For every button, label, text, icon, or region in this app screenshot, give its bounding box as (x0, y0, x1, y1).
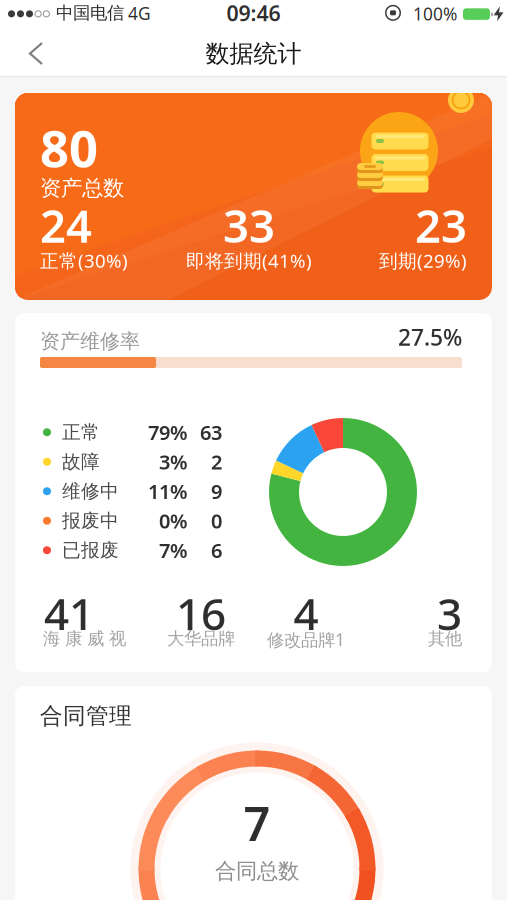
staticText: 海 康 威 视 (43, 628, 126, 649)
staticText: 24 (40, 195, 92, 255)
staticText: 0% (159, 507, 188, 534)
staticText: 9 (211, 478, 222, 505)
staticText: 中国电信 (56, 2, 124, 24)
staticText: 3% (159, 448, 188, 475)
staticText: 33 (223, 195, 275, 255)
staticText: 维修中 (62, 480, 119, 503)
staticText: 4 (293, 584, 318, 642)
staticText: 09:46 (226, 0, 280, 27)
staticText: 3 (437, 584, 462, 642)
staticText: 已报废 (62, 539, 119, 562)
staticText: 23 (415, 195, 467, 255)
staticText: 到期(29%) (379, 248, 467, 273)
staticText: 80 (40, 114, 98, 181)
staticText: 100% (413, 2, 457, 25)
staticText: 资产维修率 (40, 329, 140, 354)
staticText: 正常(30%) (40, 248, 128, 273)
staticText: 4G (128, 2, 151, 25)
staticText: 修改品牌1 (267, 628, 345, 651)
staticText: 资产总数 (40, 175, 124, 201)
staticText: 41 (44, 584, 94, 642)
staticText: 6 (211, 537, 222, 564)
staticText: 其他 (428, 628, 462, 649)
staticText: 合同总数 (215, 858, 299, 884)
staticText: 79% (148, 419, 188, 446)
staticText: 0 (211, 507, 222, 534)
staticText: 故障 (62, 450, 100, 473)
staticText: 2 (211, 448, 222, 475)
staticText: 16 (176, 584, 226, 642)
staticText: 正常 (62, 421, 100, 444)
staticText: 63 (200, 419, 222, 446)
staticText: 合同管理 (40, 702, 132, 730)
staticText: 7% (159, 537, 188, 564)
staticText: 7 (243, 792, 270, 854)
button[interactable]: 返回 (18, 32, 54, 75)
staticText: 大华品牌 (167, 628, 235, 649)
staticText: 即将到期(41%) (186, 248, 312, 273)
staticText: 报废中 (62, 509, 119, 532)
staticText: 数据统计 (205, 39, 301, 68)
staticText: 11% (148, 478, 188, 505)
staticText: 27.5% (398, 322, 462, 352)
